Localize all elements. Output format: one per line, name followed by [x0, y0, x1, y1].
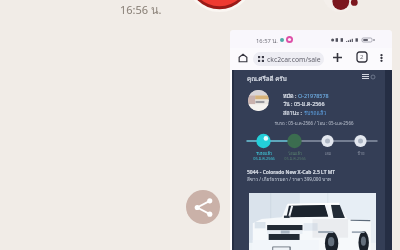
staticText: 16:57 น. [256, 36, 278, 45]
button[interactable]: Tabs [354, 49, 369, 64]
staticText: คุณ.ศรีลดี ครับ [247, 74, 287, 84]
staticText: โอนแล้ว [282, 151, 308, 157]
staticText: หมัด : [283, 92, 298, 101]
staticText: 05-ม.ค-2566 [282, 156, 308, 162]
staticText: 16:56 น. [120, 1, 162, 18]
staticText: เล่ม [315, 151, 341, 157]
staticText: O-21978578 [298, 92, 329, 99]
button[interactable]: More options [374, 50, 389, 65]
staticText: สีขาว / เกียร์ธรรมดา / ราคา 399,000 บาท [247, 176, 331, 183]
button[interactable]: Share [186, 190, 220, 224]
staticText: วัน : 05-ม.ค-2566 [283, 100, 325, 109]
staticText: รับรถแล้ว [304, 109, 327, 118]
staticText: 05-ม.ค-2566 [251, 156, 277, 162]
button[interactable]: ckc2car.com/sale [253, 52, 324, 66]
staticText: 2 [360, 53, 364, 61]
button[interactable]: Home [235, 50, 250, 65]
staticText: รับรถแล้ว [251, 151, 277, 157]
staticText: 5044 - Colorado New X-Cab 2.5 LT MT [247, 169, 336, 176]
button[interactable]: New tab [330, 50, 345, 65]
staticText: รับรถ : 05-ม.ค-2566 / โอน : 05-ม.ค-2566 [233, 120, 392, 127]
staticText: สถานะ : [283, 109, 304, 118]
staticText: ป้าย [348, 151, 374, 157]
staticText: ckc2car.com/sale [267, 55, 321, 64]
